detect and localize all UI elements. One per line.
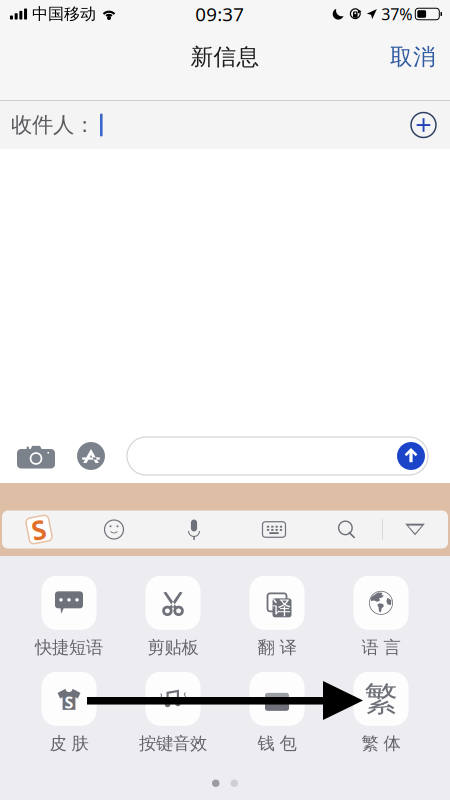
staticText: 译 xyxy=(272,596,291,619)
button[interactable]: 取消 xyxy=(376,35,450,79)
button[interactable]: 语 言 xyxy=(329,569,433,665)
staticText: S xyxy=(31,512,46,547)
button[interactable]: Hide keyboard xyxy=(382,511,448,547)
staticText: 钱 包 xyxy=(257,733,296,754)
button[interactable]: Voice input xyxy=(152,511,236,547)
button[interactable]: 按键音效 xyxy=(121,665,225,761)
staticText: 繁 xyxy=(364,678,397,719)
button[interactable]: 译 xyxy=(225,569,329,665)
button[interactable]: 快捷短语 xyxy=(17,569,121,665)
button[interactable]: Add contact xyxy=(411,112,436,137)
button[interactable]: Send xyxy=(397,442,425,470)
staticText: 取消 xyxy=(390,43,436,71)
staticText: 皮 肤 xyxy=(49,733,88,754)
staticText: 快捷短语 xyxy=(35,637,103,658)
staticText: 09:37 xyxy=(195,2,244,26)
button[interactable]: Search xyxy=(312,511,382,547)
staticText: 语 言 xyxy=(361,637,400,658)
staticText: 收件人： xyxy=(11,112,95,138)
staticText: S xyxy=(64,692,73,713)
button[interactable]: Camera xyxy=(18,443,54,469)
button[interactable]: Keyboard xyxy=(236,511,312,547)
staticText: 中国移动 xyxy=(32,4,96,24)
button[interactable]: S xyxy=(17,665,121,761)
staticText: 翻 译 xyxy=(257,637,296,658)
button[interactable]: Sogou xyxy=(2,511,76,547)
button[interactable]: 剪贴板 xyxy=(121,569,225,665)
staticText: 繁 体 xyxy=(361,733,400,754)
button[interactable]: 钱 包 xyxy=(225,665,329,761)
button[interactable]: 繁 xyxy=(329,665,433,761)
staticText: 剪贴板 xyxy=(147,637,198,658)
staticText: 新信息 xyxy=(190,43,259,71)
button[interactable]: Emoji xyxy=(76,511,152,547)
staticText: 37% xyxy=(381,3,412,25)
staticText: 按键音效 xyxy=(139,733,207,754)
button[interactable]: App Store xyxy=(77,442,105,470)
